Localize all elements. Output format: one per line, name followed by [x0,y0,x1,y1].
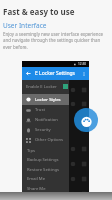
staticText: Backup Settings [27,157,59,163]
button[interactable]: Locker Styles [22,94,69,105]
staticText: Share Me [27,186,46,192]
button[interactable]: More options [81,71,87,77]
button[interactable]: Restore Settings [22,165,69,174]
staticText: Fast & easy to use [3,6,75,17]
staticText: Other Options [35,137,64,143]
button[interactable]: Back [25,70,32,77]
staticText: Locker Styles [35,97,61,103]
staticText: E Locker Settings [35,70,76,77]
button[interactable]: Email Me [22,174,69,183]
button[interactable]: Backup Settings [22,155,69,164]
staticText: 12:30 [78,62,87,66]
staticText: Security [35,127,51,133]
staticText: Trust [35,107,45,113]
staticText: Tips [27,148,35,154]
button[interactable]: Trust [22,105,69,115]
staticText: User Interface [3,21,47,30]
staticText: Restore Settings [27,167,60,173]
button[interactable]: Other Options [22,135,69,145]
staticText: Enable E Locker [26,84,57,90]
button[interactable]: Notification [22,115,69,125]
button[interactable]: Security [22,125,69,135]
staticText: Email Me [27,176,46,182]
staticText: Enjoy a seemingly new user interface exp… [3,31,108,51]
staticText: Notification [35,117,58,123]
button[interactable]: Tips [22,146,69,155]
button[interactable]: Enable E Locker [22,80,69,94]
button[interactable]: Change theme [74,108,98,132]
button[interactable]: Share Me [22,184,69,193]
